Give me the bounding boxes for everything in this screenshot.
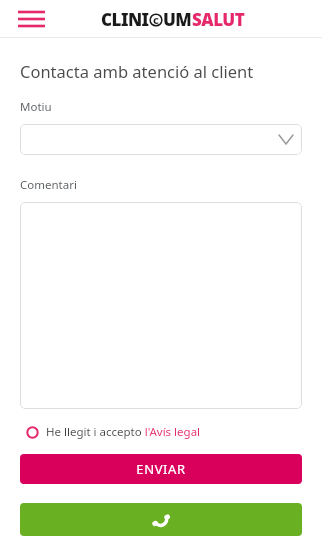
staticText: Motiu (20, 99, 52, 115)
staticText: CLINI (101, 8, 149, 31)
staticText: Comentari (20, 177, 77, 193)
staticText: He llegit i accepto l'Avís legal (46, 424, 201, 440)
staticText: SALUT (192, 8, 245, 31)
button[interactable]: Call (20, 503, 302, 536)
staticText: ENVIAR (136, 460, 186, 478)
button[interactable]: ENVIAR (20, 454, 302, 484)
staticText: Contacta amb atenció al client (20, 60, 254, 82)
button[interactable]: Comentari input (20, 202, 302, 409)
button[interactable]: He llegit i accepto l'Avís legal (26, 421, 201, 443)
staticText: UM (163, 8, 192, 31)
button[interactable]: CLINI (101, 8, 245, 31)
staticText: C (153, 14, 159, 26)
button[interactable]: Menu (14, 6, 50, 32)
button[interactable]: Motiu selector (20, 124, 302, 155)
